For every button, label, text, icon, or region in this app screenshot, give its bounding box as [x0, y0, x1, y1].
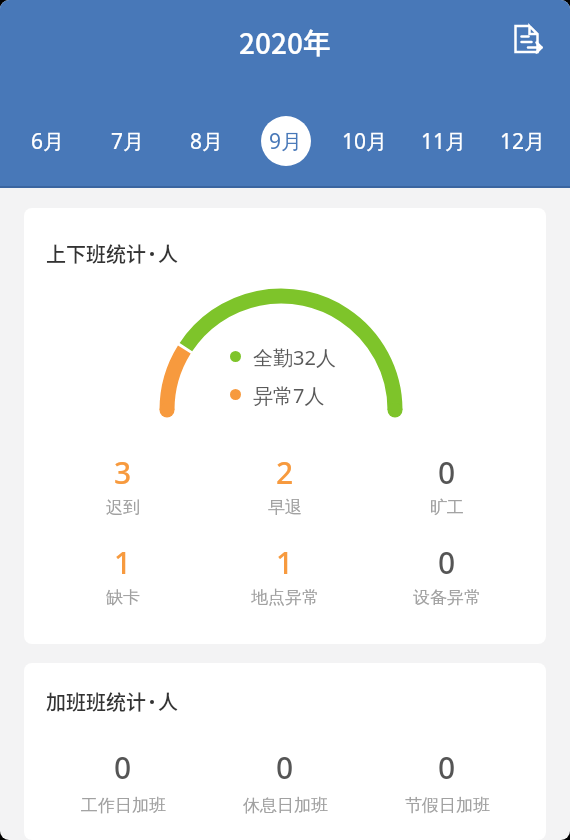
staticText: 休息日加班 — [243, 795, 328, 816]
button[interactable]: 1 — [204, 542, 366, 610]
staticText: 人 — [158, 687, 178, 716]
staticText: 1 — [276, 542, 294, 578]
staticText: 早退 — [268, 497, 302, 518]
button[interactable]: 0 — [204, 747, 366, 818]
staticText: 2020年 — [239, 22, 331, 63]
staticText: 0 — [114, 747, 132, 783]
staticText: 1 — [114, 542, 132, 578]
staticText: 缺卡 — [106, 587, 140, 608]
staticText: 节假日加班 — [405, 795, 490, 816]
staticText: 工作日加班 — [81, 795, 166, 816]
button[interactable]: 0 — [366, 452, 528, 520]
staticText: 0 — [438, 542, 456, 578]
button[interactable]: 12月 — [483, 113, 562, 169]
staticText: 6月 — [31, 127, 65, 156]
staticText: 3 — [114, 452, 132, 488]
button[interactable]: 0 — [42, 747, 204, 818]
button[interactable]: 1 — [42, 542, 204, 610]
staticText: 旷工 — [430, 497, 464, 518]
button[interactable]: 2 — [204, 452, 366, 520]
button[interactable]: 11月 — [404, 113, 483, 169]
button[interactable]: 3 — [42, 452, 204, 520]
staticText: 11月 — [421, 127, 467, 156]
button[interactable]: 6月 — [8, 113, 88, 169]
staticText: 8月 — [190, 127, 224, 156]
staticText: 设备异常 — [413, 587, 481, 608]
staticText: 异常7人 — [253, 382, 325, 406]
button[interactable]: 9月 — [246, 113, 325, 169]
staticText: 迟到 — [106, 497, 140, 518]
staticText: 12月 — [500, 127, 546, 156]
staticText: 0 — [438, 452, 456, 488]
button[interactable]: 10月 — [325, 113, 404, 169]
button[interactable] — [513, 23, 545, 55]
staticText: 全勤32人 — [253, 344, 336, 368]
staticText: 7月 — [111, 127, 145, 156]
staticText: 地点异常 — [251, 587, 319, 608]
button[interactable]: 8月 — [167, 113, 246, 169]
button[interactable]: 0 — [366, 542, 528, 610]
staticText: 2 — [276, 452, 294, 488]
staticText: 人 — [158, 239, 178, 268]
staticText: 加班班统计 — [46, 687, 146, 716]
staticText: 10月 — [342, 127, 388, 156]
staticText: 0 — [276, 747, 294, 783]
button[interactable]: 7月 — [88, 113, 167, 169]
staticText: 上下班统计 — [46, 239, 146, 268]
staticText: 9月 — [269, 127, 303, 156]
button[interactable]: 0 — [366, 747, 528, 818]
staticText: 0 — [438, 747, 456, 783]
